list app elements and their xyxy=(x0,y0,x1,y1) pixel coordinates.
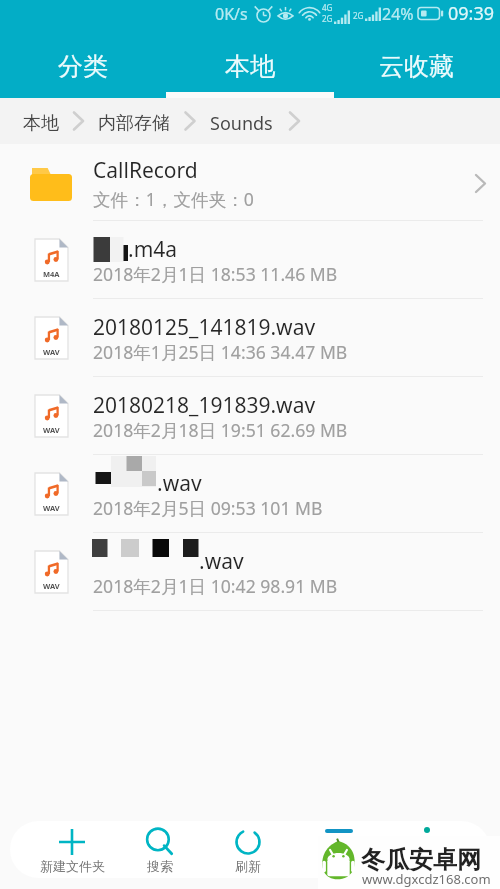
button[interactable]: 刷新 xyxy=(204,821,292,878)
staticText: WAV xyxy=(43,347,60,357)
staticText: WAV xyxy=(43,425,60,435)
staticText: 分类 xyxy=(58,51,108,82)
button[interactable]: WAV xyxy=(0,455,500,533)
button[interactable]: CallRecord xyxy=(0,145,500,221)
button[interactable]: 本地 xyxy=(166,0,333,92)
staticText: .wav xyxy=(157,469,202,498)
staticText: 24% xyxy=(382,3,414,25)
staticText: WAV xyxy=(43,581,60,591)
staticText: 0K/s xyxy=(215,3,248,25)
staticText: 2G xyxy=(353,10,364,21)
staticText: 2018年2月1日 18:53 11.46 MB xyxy=(93,262,338,286)
button[interactable]: 本地 xyxy=(23,98,59,144)
staticText: 4G xyxy=(322,2,333,13)
staticText: 20180218_191839.wav xyxy=(93,391,316,420)
staticText: 搜索 xyxy=(147,858,173,874)
staticText: Sounds xyxy=(210,111,273,136)
staticText: www.dgxcdz168.com xyxy=(362,870,491,888)
staticText: 刷新 xyxy=(235,858,261,874)
button[interactable]: 搜索 xyxy=(116,821,204,878)
staticText: 2018年1月25日 14:36 34.47 MB xyxy=(93,340,348,364)
staticText: CallRecord xyxy=(93,156,198,185)
staticText: 新建文件夹 xyxy=(40,858,105,874)
staticText: 冬瓜安卓网 xyxy=(361,845,481,875)
staticText: 2018年2月5日 09:53 101 MB xyxy=(93,496,323,520)
button[interactable]: 云收藏 xyxy=(333,0,500,92)
staticText: 09:39 xyxy=(448,1,495,26)
staticText: WAV xyxy=(43,503,60,513)
button[interactable]: M4A xyxy=(0,221,500,299)
staticText: 20180125_141819.wav xyxy=(93,313,316,342)
staticText: M4A xyxy=(43,269,60,279)
staticText: 文件：1，文件夹：0 xyxy=(93,187,254,211)
button[interactable]: WAV xyxy=(0,533,500,611)
staticText: .m4a xyxy=(128,235,178,264)
button[interactable]: 新建文件夹 xyxy=(28,821,116,878)
staticText: 2018年2月18日 19:51 62.69 MB xyxy=(93,418,348,442)
button[interactable]: WAV xyxy=(0,299,500,377)
staticText: 本地 xyxy=(23,112,59,135)
button[interactable]: Sounds xyxy=(210,98,273,144)
button[interactable]: 内部存储 xyxy=(98,98,170,144)
button[interactable]: WAV xyxy=(0,377,500,455)
staticText: 本地 xyxy=(225,51,275,82)
staticText: .wav xyxy=(199,547,244,576)
staticText: 2G xyxy=(322,13,333,24)
staticText: 云收藏 xyxy=(379,51,454,82)
button[interactable]: 分类 xyxy=(0,0,166,92)
staticText: 2018年2月1日 10:42 98.91 MB xyxy=(93,574,338,598)
staticText: 内部存储 xyxy=(98,112,170,135)
